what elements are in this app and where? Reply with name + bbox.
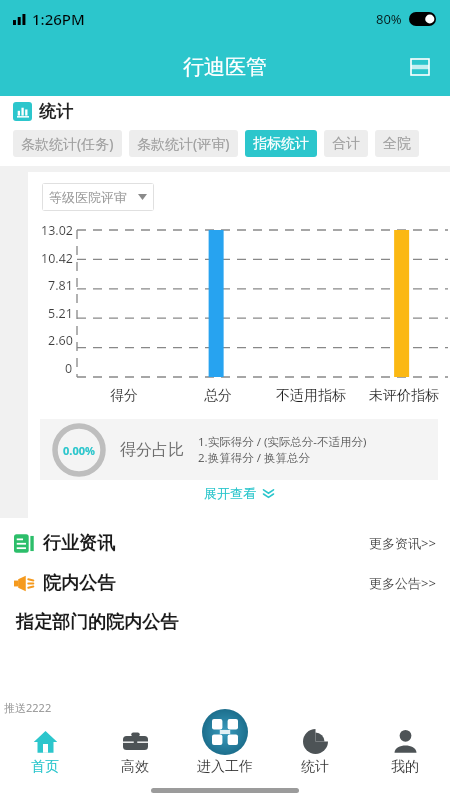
staticText: 行迪医管 [183,54,267,80]
button[interactable]: 我的 [360,696,450,782]
button[interactable]: 进入工作 [180,696,270,782]
staticText: 合计 [332,135,360,153]
staticText: 全院 [383,135,411,153]
staticText: 条款统计(任务) [21,134,114,153]
staticText: 推送2222 [4,700,52,715]
staticText: 7.81 [48,277,73,294]
button[interactable]: 全院 [375,130,419,157]
button[interactable]: 统计 [270,696,360,782]
staticText: 0.00% [63,443,95,458]
staticText: 0 [65,360,73,377]
staticText: 5.21 [48,305,73,322]
staticText: 总分 [204,387,232,405]
staticText: 2.60 [48,332,73,349]
staticText: 80% [376,10,402,28]
staticText: 进入工作 [197,758,253,776]
staticText: 行业资讯 [43,532,115,555]
staticText: 得分 [110,387,138,405]
staticText: 10.42 [41,250,73,267]
staticText: 院内公告 [43,572,115,595]
button[interactable]: 等级医院评审 [42,183,154,211]
staticText: 更多公告>> [369,574,436,592]
staticText: 1:26PM [32,9,85,29]
button[interactable]: 指标统计 [245,130,317,157]
staticText: 未评价指标 [369,387,439,405]
staticText: 展开查看 [204,485,256,501]
staticText: 指标统计 [253,135,309,153]
staticText: 13.02 [41,222,73,239]
staticText: 统计 [301,758,329,776]
button[interactable]: 行业资讯 [0,529,450,557]
staticText: 1.实际得分 / (实际总分-不适用分) [198,434,367,450]
button[interactable]: 院内公告 [0,569,450,597]
staticText: 不适用指标 [276,387,346,405]
staticText: 我的 [391,758,419,776]
button[interactable]: Menu [402,49,438,85]
staticText: 高效 [121,758,149,776]
button[interactable]: 条款统计(评审) [129,130,238,157]
staticText: 得分占比 [120,440,184,460]
button[interactable]: 展开查看 [40,480,438,506]
button[interactable]: 合计 [324,130,368,157]
button[interactable]: 高效 [90,696,180,782]
staticText: 条款统计(评审) [137,134,230,153]
staticText: 2.换算得分 / 换算总分 [198,450,310,466]
staticText: 首页 [31,758,59,776]
button[interactable]: 条款统计(任务) [13,130,122,157]
staticText: 等级医院评审 [49,189,127,205]
button[interactable]: 推送2222 [0,696,90,782]
staticText: 指定部门的院内公告 [16,611,178,634]
staticText: 更多资讯>> [369,534,436,552]
staticText: 统计 [39,101,73,122]
